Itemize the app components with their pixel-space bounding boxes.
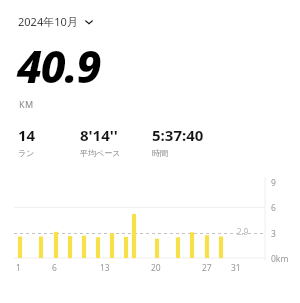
staticText: 40.9 [17, 36, 101, 96]
staticText: 13 [100, 262, 110, 274]
staticText: 9 [271, 177, 276, 189]
staticText: ラン [18, 148, 35, 158]
button[interactable]: Select month [18, 14, 94, 29]
staticText: 2024年10月 [18, 14, 78, 29]
button[interactable]: 8'14'' [80, 125, 152, 158]
staticText: 31 [231, 262, 241, 274]
button[interactable]: 5:37:40 [152, 125, 252, 158]
staticText: 平均ペース [80, 148, 121, 158]
staticText: KM [19, 98, 34, 110]
staticText: 6 [271, 202, 276, 214]
button[interactable]: 14 [18, 125, 80, 158]
staticText: 5:37:40 [152, 125, 204, 145]
staticText: 2.9 [237, 226, 249, 237]
staticText: 14 [18, 125, 36, 145]
staticText: 27 [202, 262, 212, 274]
staticText: 20 [151, 262, 161, 274]
staticText: 1 [16, 262, 21, 274]
staticText: 時間 [152, 148, 168, 158]
staticText: 6 [52, 262, 57, 274]
staticText: 3 [271, 228, 276, 240]
staticText: 8'14'' [80, 125, 118, 145]
staticText: 0km [271, 253, 289, 265]
